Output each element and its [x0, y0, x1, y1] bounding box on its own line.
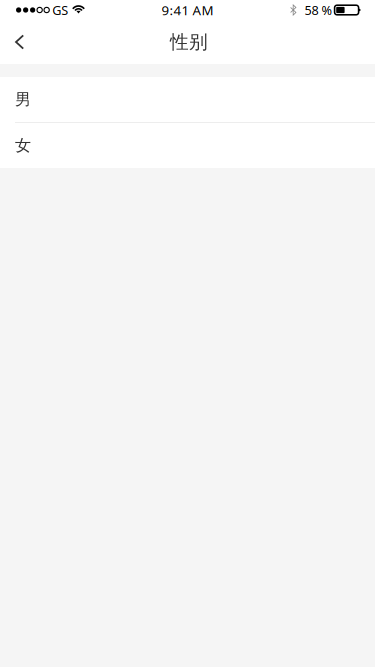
button[interactable]: 女	[0, 123, 375, 168]
staticText: 性别	[170, 30, 208, 54]
staticText: GS	[52, 1, 68, 19]
staticText: 女	[15, 135, 31, 156]
button[interactable]: 男	[0, 77, 375, 123]
staticText: 男	[15, 89, 31, 110]
button[interactable]: Back	[0, 20, 52, 64]
staticText: 58 %	[305, 1, 333, 19]
staticText: 9:41 AM	[161, 1, 213, 19]
